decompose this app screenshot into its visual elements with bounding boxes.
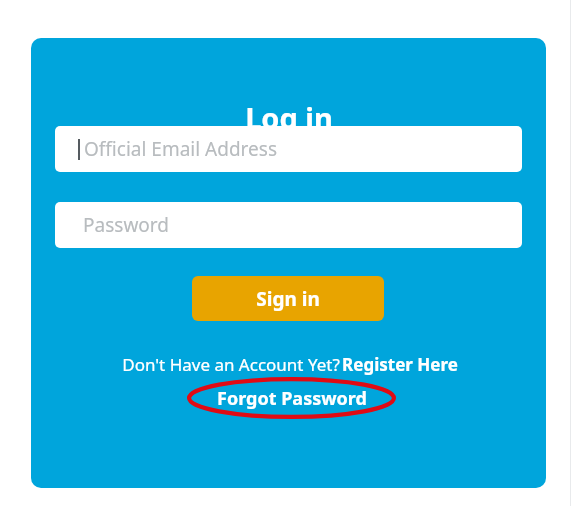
staticText: Register Here	[342, 353, 458, 376]
staticText: Password	[83, 212, 169, 238]
staticText: Sign in	[256, 286, 320, 312]
button[interactable]: Sign in	[192, 276, 384, 321]
button[interactable]: Official Email Address	[55, 126, 522, 172]
button[interactable]: Forgot Password	[187, 377, 396, 419]
button[interactable]: Password	[55, 202, 522, 248]
staticText: Log in	[245, 98, 333, 137]
staticText: Official Email Address	[84, 136, 277, 162]
staticText: Don't Have an Account Yet?	[120, 353, 342, 376]
button[interactable]: Register Here	[342, 353, 458, 376]
staticText: Forgot Password	[217, 386, 367, 411]
